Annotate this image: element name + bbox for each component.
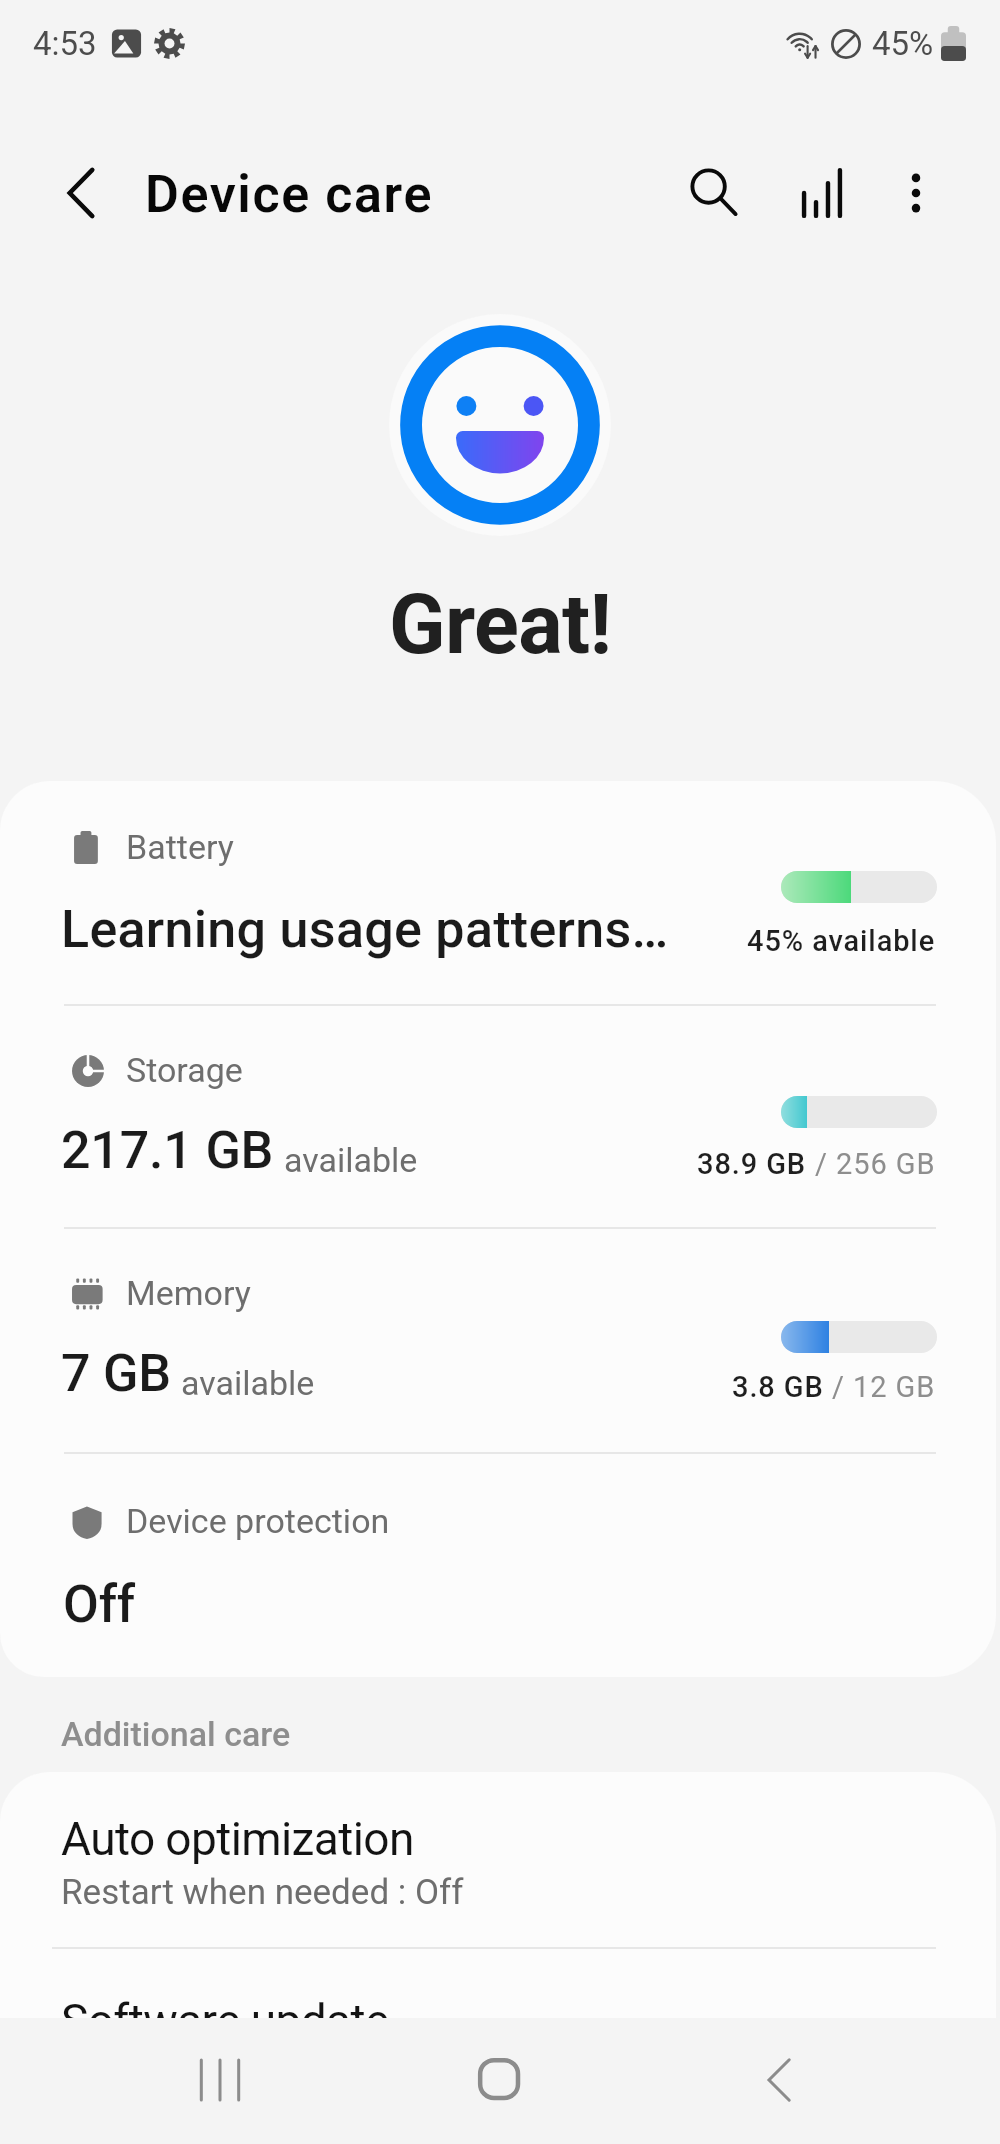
button[interactable]: Battery — [0, 781, 996, 1004]
staticText: Battery — [126, 827, 234, 867]
button[interactable]: Software update — [0, 1947, 996, 2072]
staticText: Memory — [126, 1273, 251, 1313]
button[interactable]: Back — [724, 2024, 836, 2136]
staticText: Learning usage patterns… — [61, 899, 669, 960]
staticText: / 12 GB — [824, 1370, 936, 1404]
button[interactable]: Home — [444, 2024, 556, 2136]
staticText: Great! — [389, 576, 612, 673]
staticText: available — [181, 1363, 315, 1403]
staticText: Auto optimization — [61, 1812, 414, 1866]
button[interactable]: Auto optimization — [0, 1772, 996, 1950]
staticText: 7 GB — [61, 1343, 171, 1404]
staticText: Software update — [61, 1994, 389, 2048]
button[interactable]: More options — [860, 137, 972, 249]
staticText: 4:53 — [33, 24, 97, 63]
button[interactable]: Memory — [0, 1227, 996, 1450]
staticText: / 256 GB — [807, 1147, 936, 1181]
staticText: Device protection — [126, 1501, 390, 1541]
button[interactable]: Usage statistics — [766, 137, 878, 249]
button[interactable]: Search — [658, 137, 770, 249]
staticText: Device care — [145, 164, 433, 225]
staticText: Restart when needed : Off — [61, 1872, 464, 1913]
button[interactable]: Recent apps — [164, 2024, 276, 2136]
staticText: Additional care — [61, 1714, 291, 1754]
staticText: 3.8 GB — [732, 1370, 824, 1404]
staticText: 217.1 GB — [61, 1120, 274, 1181]
staticText: Storage — [126, 1050, 243, 1090]
staticText: Off — [63, 1574, 135, 1635]
staticText: 45% — [872, 24, 934, 63]
button[interactable]: Navigate up — [25, 137, 137, 249]
staticText: 45% available — [747, 924, 936, 958]
staticText: 38.9 GB — [697, 1147, 807, 1181]
button[interactable]: Device protection — [0, 1452, 996, 1677]
staticText: available — [284, 1140, 418, 1180]
button[interactable]: Storage — [0, 1004, 996, 1227]
